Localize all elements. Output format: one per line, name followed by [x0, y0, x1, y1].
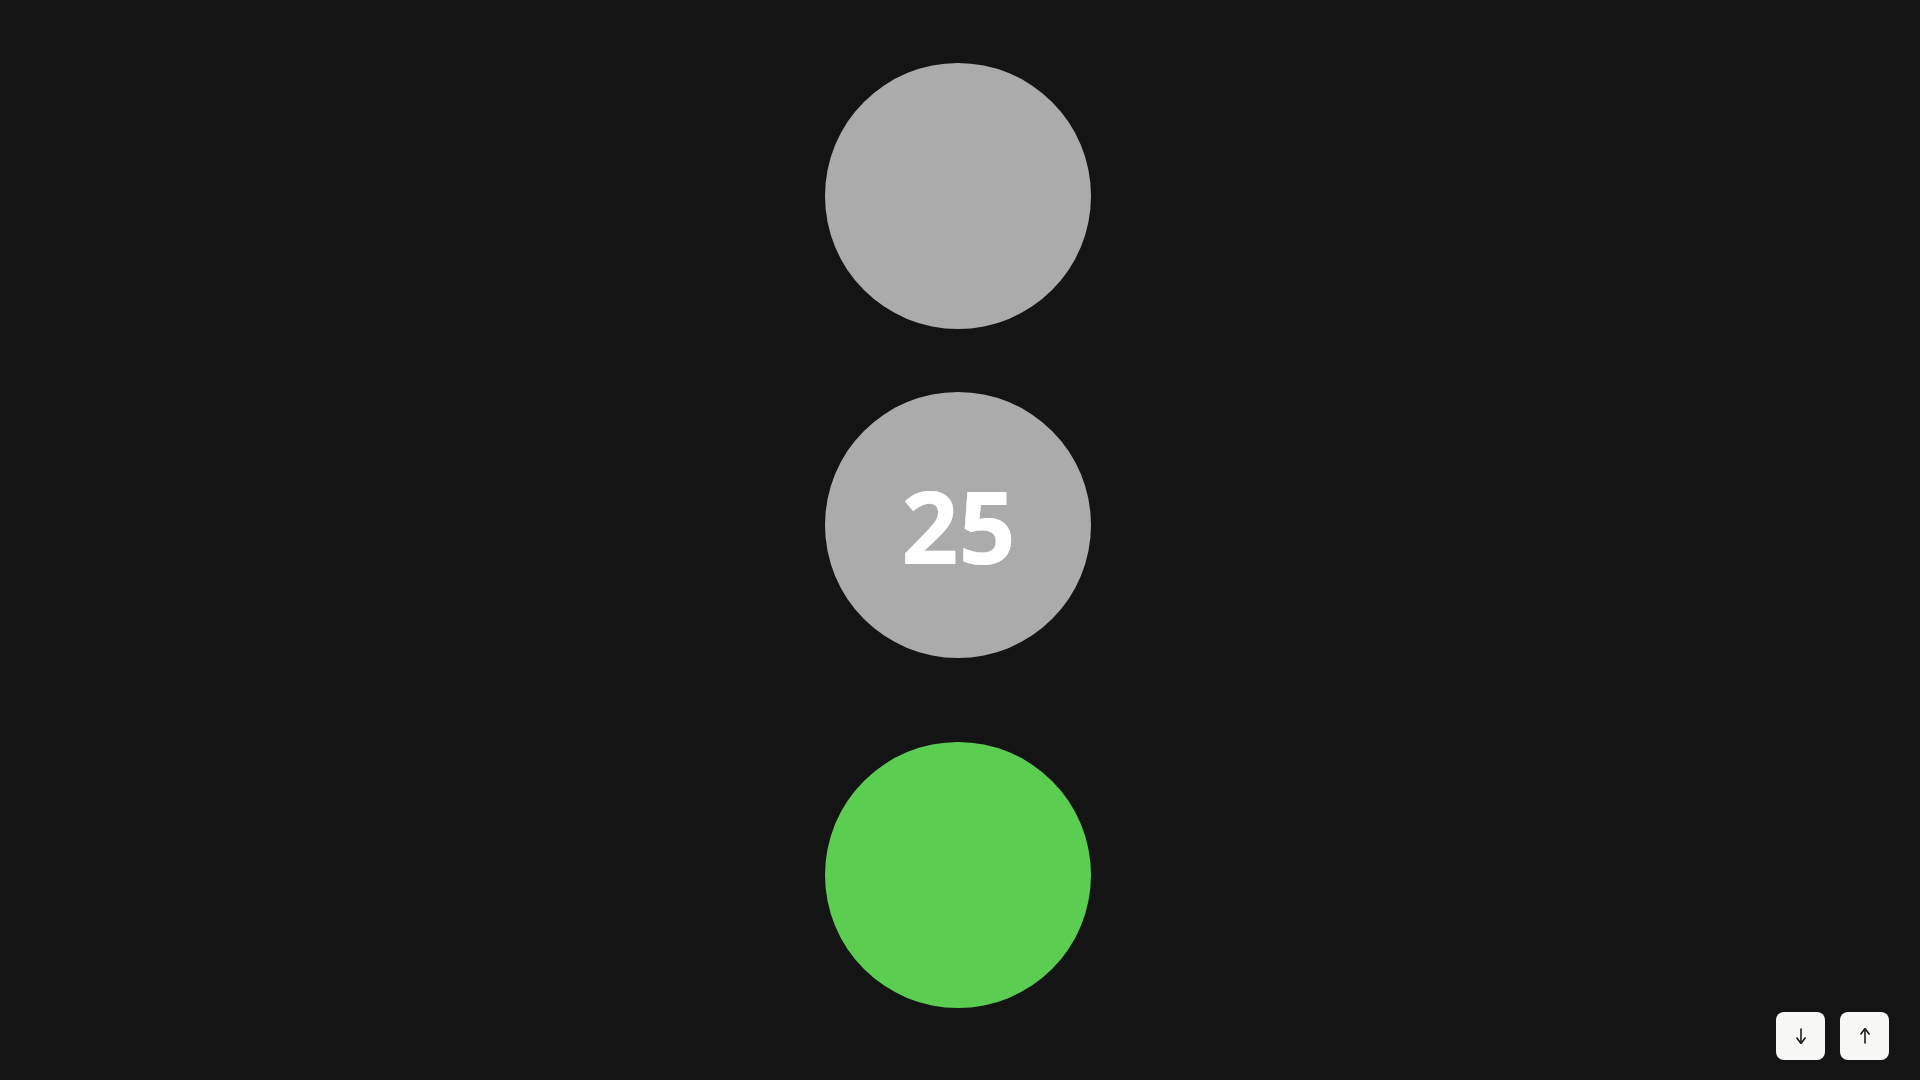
button[interactable]: Circle one	[825, 63, 1091, 329]
button[interactable]: Green circle	[825, 742, 1091, 1008]
button[interactable]: 25	[825, 392, 1091, 658]
staticText: 25	[901, 457, 1016, 593]
button[interactable]: Scroll up	[1840, 1012, 1889, 1060]
button[interactable]: Scroll down	[1776, 1012, 1825, 1060]
